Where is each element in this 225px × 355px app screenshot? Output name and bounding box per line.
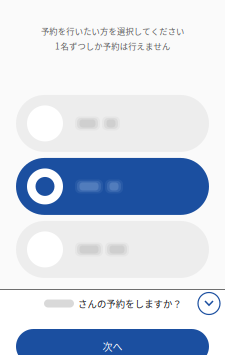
button[interactable] bbox=[16, 221, 209, 278]
staticText: 次へ bbox=[102, 339, 122, 354]
button[interactable]: 予約内容を開く bbox=[196, 290, 222, 316]
staticText: 予約を行いたい方を選択してください bbox=[41, 25, 184, 37]
button[interactable]: 次へ bbox=[16, 329, 209, 355]
button[interactable] bbox=[16, 95, 209, 152]
staticText: 1名ずつしか予約は行えません bbox=[55, 40, 170, 52]
staticText: さんの予約をしますか？ bbox=[78, 297, 181, 310]
button[interactable] bbox=[16, 158, 209, 215]
